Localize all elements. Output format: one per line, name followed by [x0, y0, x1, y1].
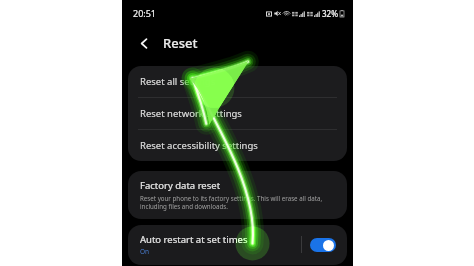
- staticText: Reset all settings: [140, 75, 216, 88]
- button[interactable]: Factory data reset: [128, 171, 347, 219]
- button[interactable]: Reset accessibility settings: [128, 130, 347, 161]
- button[interactable]: Reset all settings: [128, 66, 347, 97]
- staticText: Auto restart at set times: [140, 233, 248, 246]
- staticText: Reset network settings: [140, 107, 242, 120]
- button[interactable]: Auto restart at set times: [128, 225, 347, 265]
- button[interactable]: Reset network settings: [128, 98, 347, 129]
- button[interactable]: Auto restart toggle, on: [310, 238, 336, 252]
- staticText: Reset: [163, 34, 198, 52]
- staticText: Reset accessibility settings: [140, 139, 258, 152]
- staticText: 20:51: [133, 7, 157, 19]
- button[interactable]: Back: [134, 33, 154, 53]
- staticText: Factory data reset: [140, 179, 221, 192]
- staticText: Reset your phone to its factory settings…: [140, 194, 337, 210]
- staticText: On: [140, 247, 150, 256]
- staticText: 32%: [322, 8, 338, 19]
